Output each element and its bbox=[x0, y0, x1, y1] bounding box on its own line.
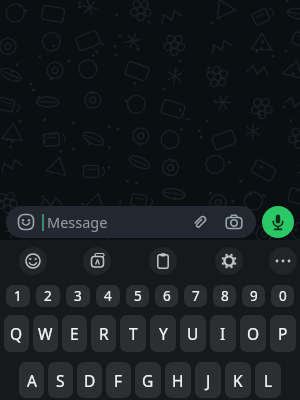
staticText: W bbox=[38, 323, 53, 344]
button[interactable]: R bbox=[91, 315, 116, 352]
button[interactable] bbox=[269, 247, 297, 275]
button[interactable]: Q bbox=[4, 315, 29, 352]
staticText: 1 bbox=[14, 287, 22, 305]
staticText: 0 bbox=[279, 287, 287, 305]
staticText: 5 bbox=[134, 287, 142, 305]
staticText: 7 bbox=[192, 287, 200, 305]
button[interactable]: 5 bbox=[126, 285, 149, 307]
staticText: Message bbox=[47, 212, 108, 232]
staticText: E bbox=[70, 323, 79, 344]
staticText: K bbox=[233, 370, 243, 391]
staticText: J bbox=[206, 370, 211, 391]
staticText: P bbox=[278, 323, 288, 344]
button[interactable] bbox=[16, 212, 36, 232]
button[interactable]: T bbox=[120, 315, 146, 352]
button[interactable]: Message bbox=[6, 206, 256, 238]
button[interactable]: 7 bbox=[184, 285, 207, 307]
button[interactable]: U bbox=[180, 315, 206, 352]
button[interactable]: I bbox=[210, 315, 236, 352]
button[interactable] bbox=[262, 206, 294, 238]
button[interactable]: O bbox=[240, 315, 266, 352]
button[interactable]: K bbox=[225, 362, 251, 398]
staticText: Q bbox=[10, 323, 23, 344]
staticText: H bbox=[172, 370, 184, 391]
button[interactable]: E bbox=[62, 315, 87, 352]
staticText: S bbox=[56, 370, 65, 391]
button[interactable]: 1 bbox=[6, 285, 30, 307]
staticText: L bbox=[264, 370, 273, 391]
button[interactable]: 6 bbox=[155, 285, 178, 307]
button[interactable]: 2 bbox=[36, 285, 60, 307]
staticText: G bbox=[142, 370, 154, 391]
button[interactable]: S bbox=[48, 362, 73, 398]
button[interactable]: Y bbox=[150, 315, 176, 352]
button[interactable]: 4 bbox=[96, 285, 120, 307]
staticText: 3 bbox=[74, 287, 82, 305]
button[interactable]: 8 bbox=[213, 285, 236, 307]
staticText: 2 bbox=[44, 287, 52, 305]
staticText: D bbox=[84, 370, 96, 391]
button[interactable]: F bbox=[106, 362, 131, 398]
button[interactable] bbox=[83, 247, 111, 275]
button[interactable]: W bbox=[33, 315, 58, 352]
button[interactable] bbox=[224, 212, 244, 232]
staticText: A bbox=[27, 370, 37, 391]
button[interactable]: 9 bbox=[242, 285, 265, 307]
button[interactable]: A bbox=[19, 362, 44, 398]
button[interactable]: H bbox=[165, 362, 191, 398]
button[interactable]: 0 bbox=[271, 285, 294, 307]
button[interactable]: G bbox=[135, 362, 161, 398]
staticText: 6 bbox=[163, 287, 171, 305]
staticText: O bbox=[247, 323, 260, 344]
button[interactable]: J bbox=[195, 362, 221, 398]
button[interactable]: L bbox=[255, 362, 281, 398]
button[interactable] bbox=[19, 247, 47, 275]
staticText: F bbox=[114, 370, 123, 391]
button[interactable] bbox=[215, 247, 243, 275]
staticText: 9 bbox=[250, 287, 258, 305]
staticText: U bbox=[187, 323, 199, 344]
button[interactable] bbox=[149, 247, 177, 275]
staticText: 4 bbox=[104, 287, 112, 305]
staticText: Y bbox=[159, 323, 168, 344]
staticText: I bbox=[220, 323, 226, 344]
button[interactable]: D bbox=[77, 362, 102, 398]
button[interactable] bbox=[190, 212, 210, 232]
staticText: 8 bbox=[221, 287, 229, 305]
button[interactable]: P bbox=[270, 315, 296, 352]
staticText: T bbox=[129, 323, 138, 344]
button[interactable]: 3 bbox=[66, 285, 90, 307]
staticText: R bbox=[99, 323, 109, 344]
